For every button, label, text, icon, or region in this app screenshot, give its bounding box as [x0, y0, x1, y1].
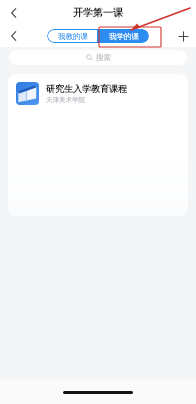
- button[interactable]: Back: [0, 0, 26, 25]
- button[interactable]: 搜索: [9, 50, 187, 65]
- staticText: 天津美术学院: [46, 96, 85, 104]
- staticText: 我学的课: [109, 32, 139, 41]
- staticText: 我教的课: [58, 32, 88, 41]
- button[interactable]: 我学的课: [98, 29, 149, 43]
- staticText: 开学第一课: [73, 6, 123, 19]
- button[interactable]: 研究生入学教育课程: [8, 74, 188, 112]
- staticText: 搜索: [96, 53, 111, 62]
- button[interactable]: Back: [0, 25, 26, 47]
- button[interactable]: 我教的课: [47, 29, 98, 43]
- staticText: 研究生入学教育课程: [46, 83, 127, 94]
- button[interactable]: Add: [170, 25, 196, 47]
